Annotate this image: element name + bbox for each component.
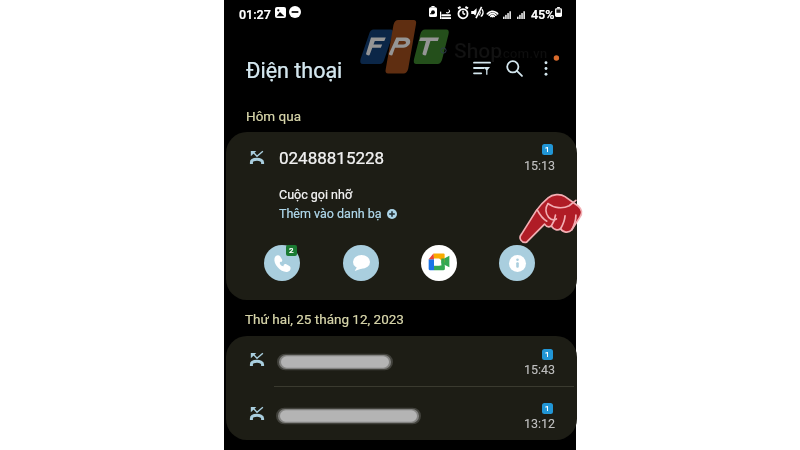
button[interactable]: Call [264, 245, 300, 281]
button[interactable]: Thêm vào danh bạ [279, 206, 397, 221]
staticText: Shop [454, 39, 503, 64]
button[interactable]: Search [492, 46, 536, 90]
staticText: 1 [545, 145, 550, 154]
button[interactable]: Filter [460, 46, 504, 90]
button[interactable]: Video call [421, 245, 457, 281]
button[interactable]: Details [499, 245, 535, 281]
staticText: 2 [289, 246, 294, 255]
button[interactable]: More options [524, 46, 568, 90]
staticText: 15:43 [524, 362, 556, 377]
staticText: Thêm vào danh bạ [279, 206, 382, 221]
staticText: Thứ hai, 25 tháng 12, 2023 [245, 311, 404, 327]
staticText: 1 [545, 404, 550, 413]
button[interactable]: Message [343, 245, 379, 281]
staticText: 1 [545, 350, 550, 359]
staticText: Hôm qua [246, 108, 301, 124]
staticText: 13:12 [524, 416, 556, 431]
staticText: Điện thoại [246, 58, 343, 83]
staticText: 02488815228 [279, 148, 385, 168]
staticText: Cuộc gọi nhỡ [279, 187, 353, 202]
staticText: 45% [531, 7, 555, 22]
staticText: .com.vn [499, 45, 548, 61]
staticText: 15:13 [524, 158, 556, 173]
staticText: 01:27 [239, 7, 271, 22]
button[interactable] [226, 132, 577, 300]
